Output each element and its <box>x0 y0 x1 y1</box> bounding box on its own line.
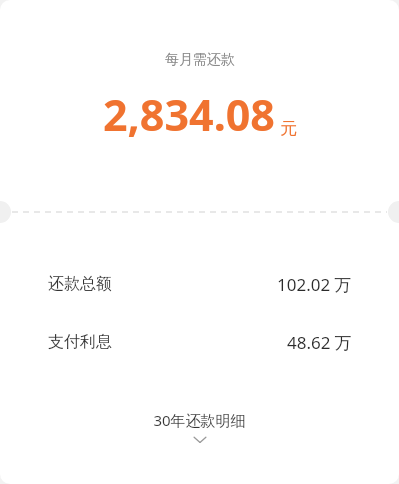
staticText: 30年还款明细 <box>153 410 246 430</box>
staticText: 2,834.08 <box>103 85 275 144</box>
other: Expand repayment details <box>193 436 207 444</box>
staticText: 每月需还款 <box>165 51 235 69</box>
button[interactable]: 支付利息 <box>48 323 352 361</box>
staticText: 支付利息 <box>48 332 112 352</box>
button[interactable]: 30年还款明细 <box>0 404 399 450</box>
staticText: 48.62 万 <box>287 331 352 354</box>
button[interactable]: 还款总额 <box>48 265 352 303</box>
staticText: 还款总额 <box>48 274 112 294</box>
staticText: 102.02 万 <box>277 273 352 296</box>
staticText: 元 <box>280 118 297 139</box>
